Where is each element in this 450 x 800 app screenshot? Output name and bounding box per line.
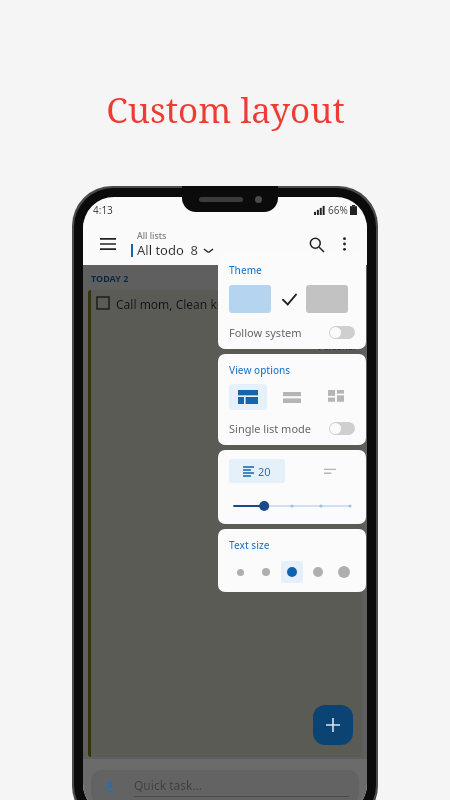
button[interactable]: Text size 1: [229, 561, 251, 583]
staticText: 20: [258, 464, 271, 479]
button[interactable]: Quick task...: [91, 770, 359, 800]
staticText: View options: [229, 363, 291, 377]
button[interactable]: Text size 2: [255, 561, 277, 583]
staticText: Personal: [97, 340, 355, 352]
button[interactable]: 20: [229, 459, 285, 483]
staticText: In 2 hr.: [97, 326, 355, 340]
button[interactable]: Add task: [313, 705, 353, 745]
staticText: All todo 8: [137, 241, 199, 259]
button[interactable]: Light theme: [229, 285, 271, 313]
button[interactable]: Card view: [229, 384, 267, 410]
button[interactable]: Single list mode: [229, 421, 355, 436]
staticText: All lists: [137, 229, 167, 241]
button[interactable]: List view: [273, 384, 311, 410]
staticText: Single list mode: [229, 421, 312, 436]
staticText: 07:00 PM: [311, 312, 355, 326]
button[interactable]: Text size 4: [307, 561, 329, 583]
staticText: 66%: [328, 203, 348, 217]
staticText: Text size: [229, 538, 270, 552]
staticText: Custom layout: [106, 86, 345, 134]
button[interactable]: Toggle complete: [97, 297, 109, 309]
button[interactable]: Compact density: [315, 459, 345, 483]
staticText: Theme: [229, 263, 262, 277]
button[interactable]: Grid view: [317, 384, 355, 410]
button[interactable]: Follow system: [229, 325, 355, 340]
staticText: TODAY 2: [91, 272, 129, 284]
button[interactable]: More options: [331, 231, 357, 257]
button[interactable]: Toggle complete: [88, 290, 362, 757]
button[interactable]: Open navigation menu: [93, 229, 123, 259]
staticText: 4:13: [93, 203, 113, 217]
staticText: Follow system: [229, 325, 302, 340]
button[interactable]: Text size 5: [333, 561, 355, 583]
button[interactable]: Search: [301, 229, 331, 259]
button[interactable]: Dark theme: [306, 285, 348, 313]
staticText: Call mom, Clean kitchen: [116, 296, 252, 312]
button[interactable]: Density slider: [229, 497, 355, 515]
staticText: Quick task...: [134, 777, 203, 793]
button[interactable]: Text size 3: [281, 561, 303, 583]
button[interactable]: All lists: [131, 229, 301, 259]
